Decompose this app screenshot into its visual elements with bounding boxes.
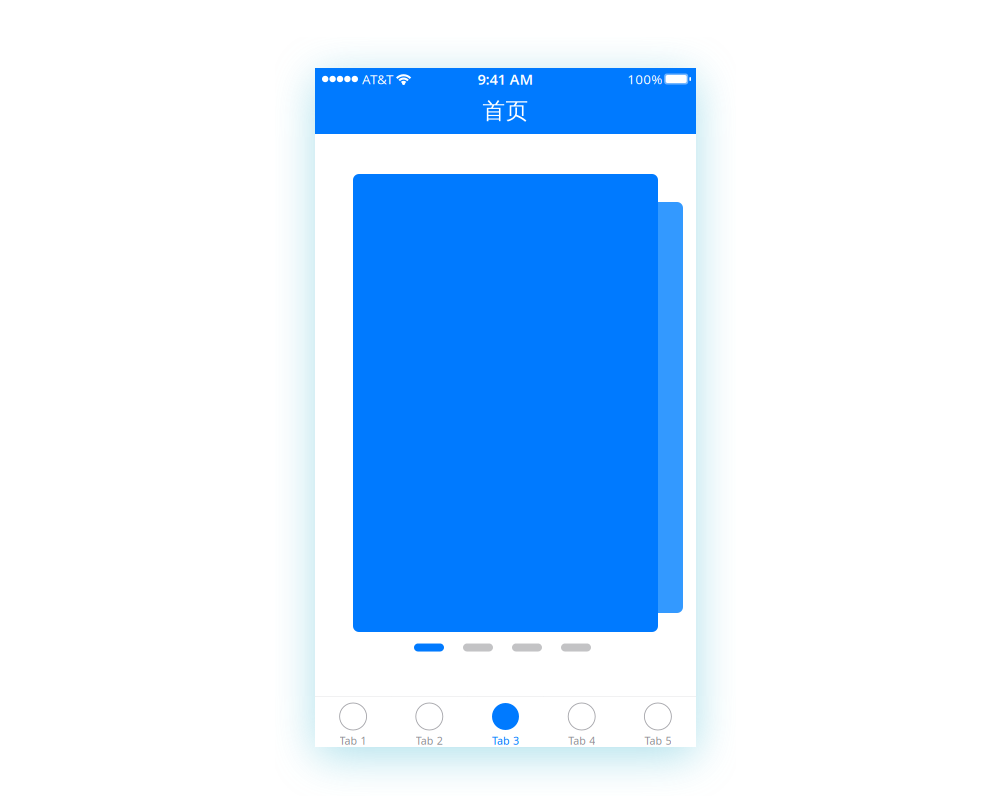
button[interactable]: Next banner <box>378 202 683 613</box>
staticText: Tab 1 <box>340 733 367 748</box>
button[interactable]: Tab 5 <box>620 696 696 747</box>
button[interactable]: Page 4 <box>561 643 591 651</box>
staticText: Tab 5 <box>644 733 671 748</box>
button[interactable]: Page 1 <box>414 643 444 651</box>
button[interactable]: Page 2 <box>463 643 493 651</box>
button[interactable]: Tab 1 <box>315 696 391 747</box>
staticText: Tab 3 <box>492 733 519 748</box>
staticText: Tab 2 <box>416 733 443 748</box>
button[interactable]: Featured banner <box>353 174 658 632</box>
button[interactable]: Tab 4 <box>544 696 620 747</box>
staticText: 首页 <box>482 97 528 125</box>
staticText: Tab 4 <box>568 733 595 748</box>
staticText: 100% <box>627 70 662 88</box>
button[interactable]: Page 3 <box>512 643 542 651</box>
button[interactable]: Tab 2 <box>391 696 467 747</box>
staticText: 9:41 AM <box>477 69 533 89</box>
button[interactable]: Tab 3 <box>467 696 544 747</box>
staticText: AT&T <box>362 70 393 88</box>
